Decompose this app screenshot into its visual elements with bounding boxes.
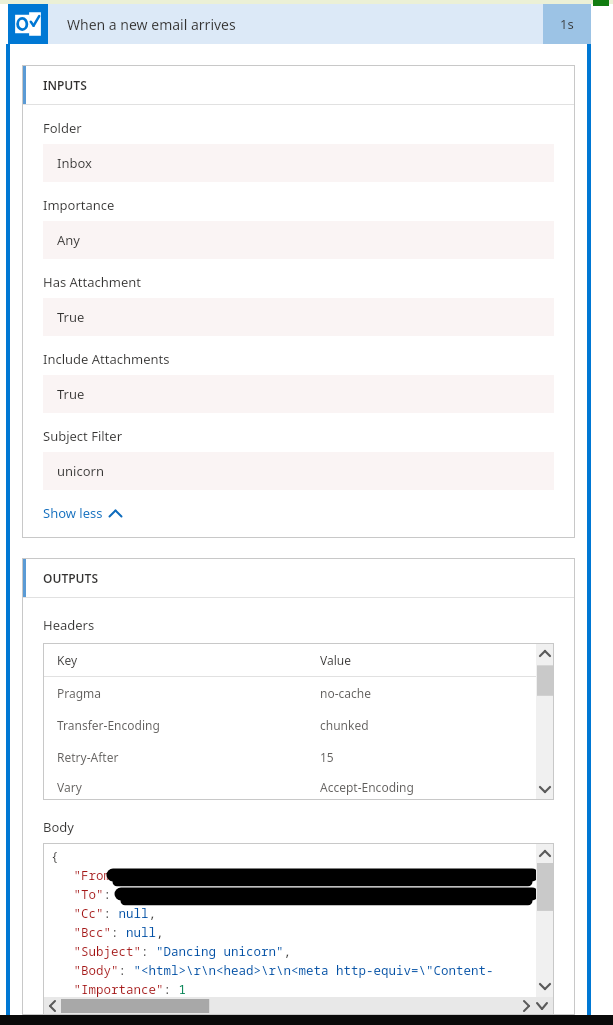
staticText: 15 <box>320 749 334 765</box>
staticText: Folder <box>43 119 82 137</box>
staticText: Subject Filter <box>43 427 123 445</box>
staticText: "Importance": 1 <box>51 981 187 997</box>
button[interactable]: Pragma <box>43 677 536 709</box>
button[interactable]: True <box>43 375 554 413</box>
staticText: "From": <box>51 867 127 886</box>
staticText: True <box>57 308 85 326</box>
button[interactable]: unicorn <box>43 452 554 490</box>
staticText: Value <box>320 652 351 668</box>
button[interactable]: True <box>43 298 554 336</box>
button[interactable]: Key <box>43 643 536 676</box>
button[interactable]: When a new email arrives <box>48 4 543 44</box>
staticText: INPUTS <box>43 77 87 93</box>
staticText: unicorn <box>57 462 104 480</box>
staticText: "To": <box>51 886 112 905</box>
staticText: "Bcc": null, <box>51 924 164 943</box>
button[interactable]: Any <box>43 221 554 259</box>
staticText: "Body": "<html>\r\n<head>\r\n<meta http-… <box>51 962 536 981</box>
button[interactable]: Inbox <box>43 144 554 182</box>
button[interactable]: Retry-After <box>43 741 536 773</box>
staticText: When a new email arrives <box>67 15 236 34</box>
staticText: OUTPUTS <box>43 570 99 586</box>
staticText: { <box>51 848 59 867</box>
staticText: 1s <box>560 15 574 33</box>
button[interactable]: Show less <box>43 504 122 522</box>
staticText: Include Attachments <box>43 350 170 368</box>
staticText: Any <box>57 231 80 249</box>
staticText: Accept-Encoding <box>320 779 414 795</box>
staticText: Inbox <box>57 154 92 172</box>
staticText: Body <box>43 818 74 836</box>
staticText: Headers <box>43 616 95 634</box>
staticText: Importance <box>43 196 115 214</box>
staticText: Pragma <box>57 685 102 701</box>
staticText: "Cc": null, <box>51 905 157 924</box>
staticText: "Subject": "Dancing unicorn", <box>51 943 292 962</box>
staticText: no-cache <box>320 685 371 701</box>
other: Outlook <box>8 4 48 44</box>
staticText: Transfer-Encoding <box>57 717 160 733</box>
staticText: Retry-After <box>57 749 119 765</box>
staticText: Vary <box>57 779 82 795</box>
button[interactable]: Transfer-Encoding <box>43 709 536 741</box>
staticText: Show less <box>43 504 103 522</box>
staticText: Has Attachment <box>43 273 142 291</box>
staticText: chunked <box>320 717 369 733</box>
button[interactable]: Vary <box>43 773 536 800</box>
staticText: True <box>57 385 85 403</box>
staticText: Key <box>57 652 78 668</box>
